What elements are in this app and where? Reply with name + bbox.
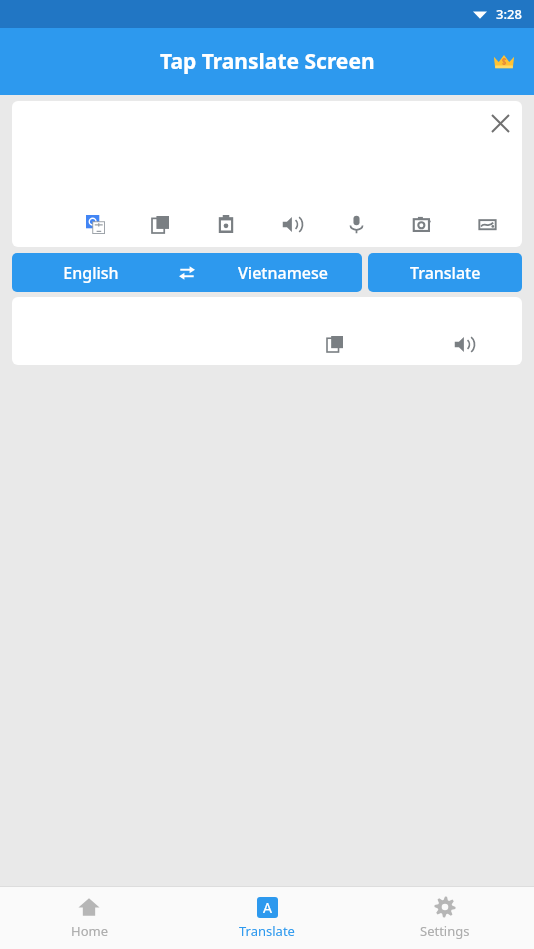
staticText: Translate — [239, 922, 295, 940]
button[interactable]: Paste — [211, 209, 241, 239]
staticText: Settings — [420, 922, 470, 940]
button[interactable]: Vietnamese — [204, 253, 362, 292]
button[interactable]: Speak — [276, 209, 306, 239]
button[interactable]: Image — [472, 209, 502, 239]
button[interactable]: English — [12, 253, 170, 292]
button[interactable]: Close — [483, 106, 517, 140]
staticText: A — [263, 898, 272, 917]
button[interactable]: Translate — [368, 253, 522, 292]
staticText: English — [63, 262, 119, 284]
staticText: Tap Translate Screen — [160, 47, 375, 76]
button[interactable]: Premium — [484, 42, 524, 82]
button[interactable]: Copy translation — [320, 329, 350, 359]
button[interactable]: Home — [0, 887, 178, 949]
button[interactable]: Swap languages — [170, 256, 204, 290]
button[interactable]: Google Translate — [80, 209, 110, 239]
button[interactable]: Copy — [145, 209, 175, 239]
staticText: Home — [71, 922, 108, 940]
button[interactable]: Settings — [356, 887, 534, 949]
staticText: Translate — [410, 262, 481, 284]
button[interactable]: Speak translation — [448, 329, 478, 359]
button[interactable]: Microphone — [341, 209, 371, 239]
button[interactable]: Camera — [407, 209, 437, 239]
staticText: 3:28 — [496, 5, 522, 23]
button[interactable]: A — [178, 887, 356, 949]
staticText: Vietnamese — [238, 262, 328, 284]
